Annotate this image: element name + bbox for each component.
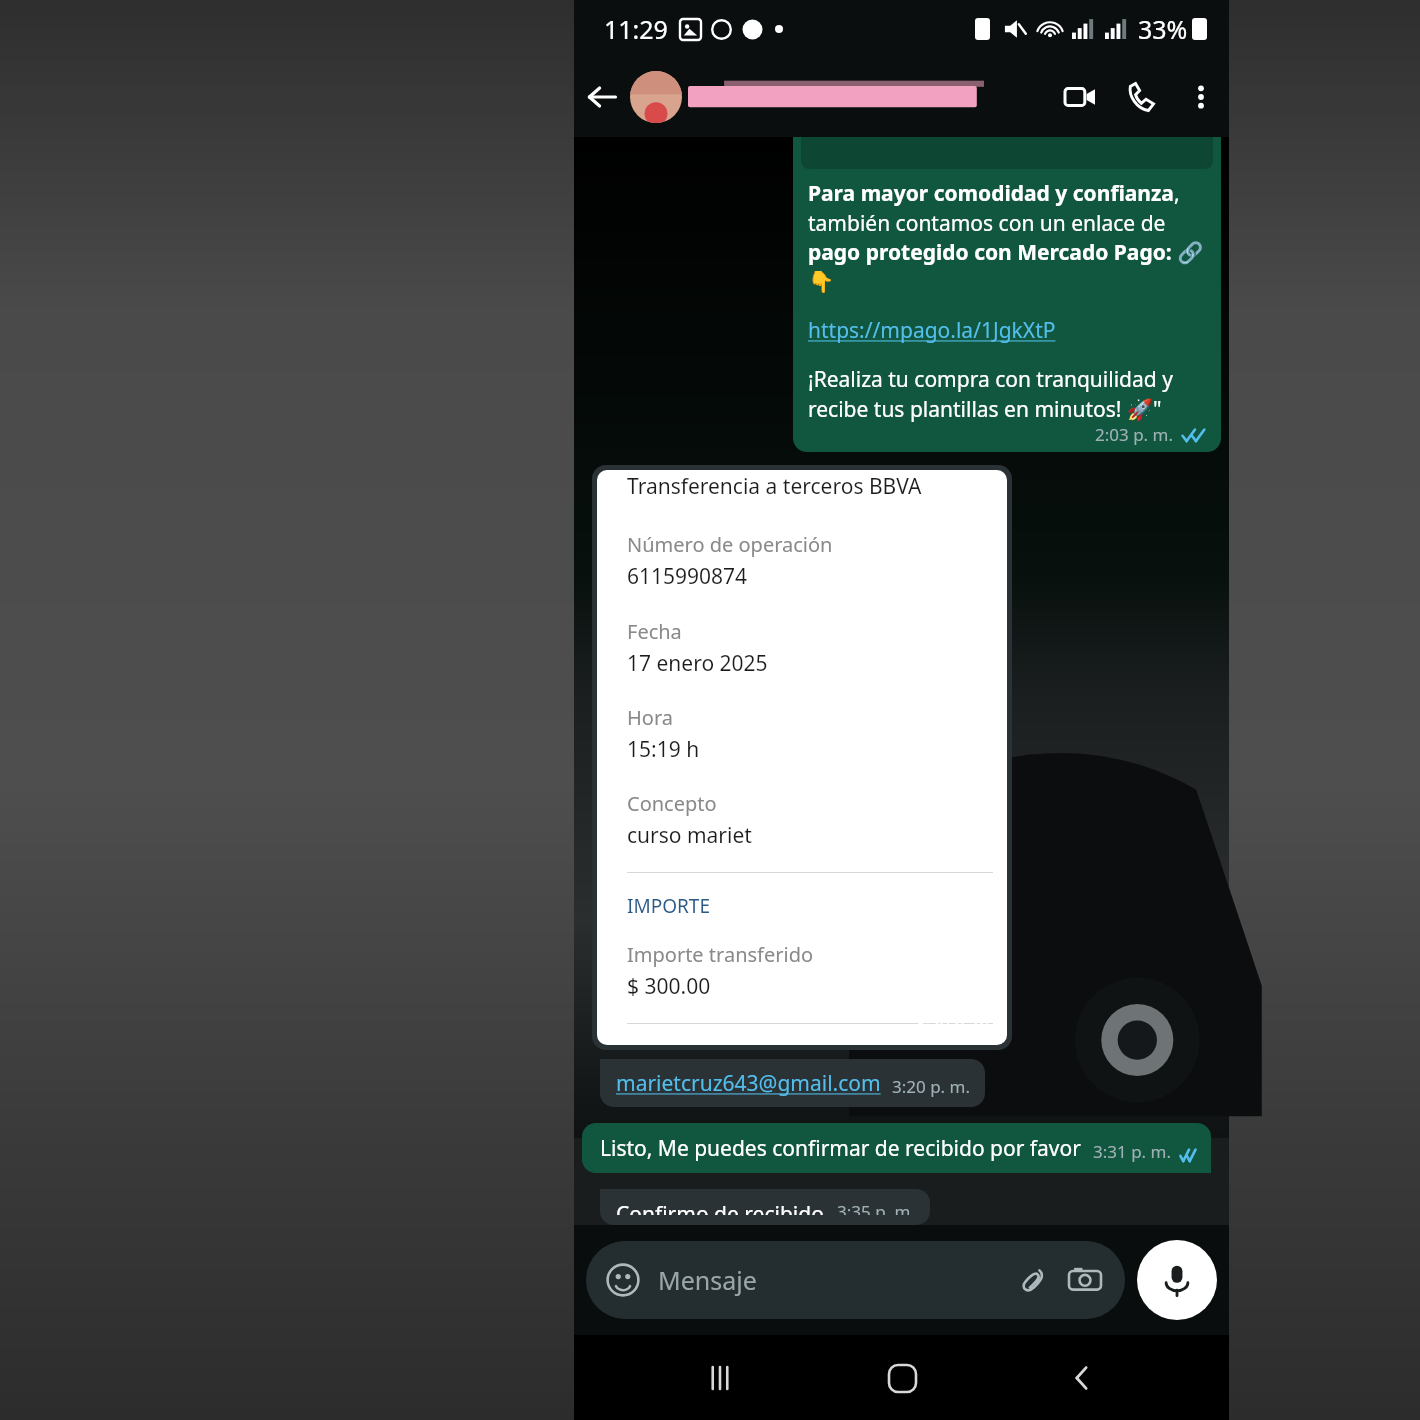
button[interactable]: Recent apps <box>685 1343 755 1413</box>
staticText: Fecha <box>627 618 682 645</box>
button[interactable]: marietcruz643@gmail.com <box>616 1069 971 1098</box>
staticText: Transferencia a terceros BBVA <box>627 472 922 501</box>
staticText: curso mariet <box>627 821 752 850</box>
staticText: 2:03 p. m. <box>1095 423 1174 446</box>
staticText: 33% <box>1138 12 1188 46</box>
staticText: 3:31 p. m. <box>1093 1140 1172 1163</box>
button[interactable]: Attach <box>1013 1260 1053 1300</box>
staticText: 3:20 p. m. <box>892 1075 971 1098</box>
button[interactable]: Listo, Me puedes confirmar de recibido p… <box>600 1134 1198 1163</box>
staticText: $ 300.00 <box>627 972 711 1001</box>
button[interactable] <box>630 57 1049 137</box>
button[interactable]: Video call <box>1049 66 1111 128</box>
staticText: 15:19 h <box>627 735 700 764</box>
staticText: Listo, Me puedes confirmar de recibido p… <box>600 1134 1081 1163</box>
staticText: Confirmo de recibido <box>616 1200 824 1215</box>
button[interactable]: Voice message <box>1137 1240 1217 1320</box>
staticText: 17 enero 2025 <box>627 649 768 678</box>
button[interactable]: Confirmo de recibido <box>616 1200 916 1215</box>
button[interactable]: More options <box>1173 69 1229 125</box>
button[interactable]: Back <box>574 69 630 125</box>
staticText: 11:29 <box>604 12 668 46</box>
staticText: Número de operación <box>627 531 833 558</box>
staticText: marietcruz643@gmail.com <box>616 1069 881 1098</box>
staticText: IMPORTE <box>627 893 710 919</box>
staticText: https://mpago.la/1JgkXtP <box>808 316 1056 345</box>
button[interactable]: Home <box>867 1343 937 1413</box>
staticText: Concepto <box>627 790 717 817</box>
button[interactable]: Call <box>1111 66 1173 128</box>
button[interactable]: Camera <box>1065 1260 1105 1300</box>
button[interactable]: Back <box>1048 1343 1118 1413</box>
staticText: Hora <box>627 704 673 731</box>
button[interactable]: Transferencia a terceros BBVA <box>597 470 1007 1045</box>
staticText: Mensaje <box>658 1263 757 1297</box>
staticText: ¡Realiza tu compra con tranquilidad y re… <box>808 365 1208 423</box>
staticText: 3:35 p. m. <box>837 1200 916 1215</box>
other: Stickers <box>606 1263 640 1297</box>
staticText: 3:20 p. m. <box>916 1012 995 1035</box>
button[interactable]: Para mayor comodidad y confianza, tambié… <box>793 137 1221 452</box>
staticText: Importe transferido <box>627 941 814 968</box>
staticText: 6115990874 <box>627 562 748 591</box>
button[interactable]: Stickers <box>606 1241 1105 1319</box>
staticText: Para mayor comodidad y confianza, tambié… <box>808 179 1208 294</box>
